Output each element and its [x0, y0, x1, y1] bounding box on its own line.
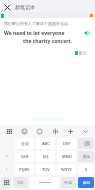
staticText: , [6, 141, 8, 146]
button[interactable]: Backspace [78, 138, 94, 149]
staticText: ! [6, 167, 8, 172]
staticText: PQRS [19, 167, 30, 172]
button[interactable]: , [1, 138, 13, 149]
staticText: We need to let everyone [4, 30, 83, 37]
button[interactable]: 中/英 [61, 177, 76, 188]
staticText: 123 [17, 180, 24, 185]
staticText: 新笔记本 [15, 4, 35, 10]
staticText: 中/英 [64, 180, 73, 185]
staticText: JKL [43, 154, 49, 159]
button[interactable]: Space [30, 177, 59, 188]
button[interactable]: Settings [34, 126, 45, 137]
staticText: the charity concert. [4, 38, 91, 45]
button[interactable]: WXYZ [57, 164, 76, 175]
button[interactable]: MNO [57, 151, 76, 162]
staticText: 我们要让所有人了解这个慈善音乐会。 [4, 21, 91, 26]
button[interactable]: 0 [78, 164, 94, 175]
button[interactable]: 换行 [78, 177, 94, 188]
button[interactable]: ? [1, 151, 13, 162]
staticText: 重输 [83, 155, 90, 159]
button[interactable]: Add [65, 126, 76, 137]
staticText: TUV [42, 167, 50, 172]
button[interactable]: Close [2, 2, 12, 12]
button[interactable]: 重输 [78, 151, 94, 162]
button[interactable]: Hide keyboard [80, 126, 91, 137]
staticText: DEF [63, 141, 71, 146]
staticText: MNO [62, 154, 72, 159]
staticText: WXYZ [61, 167, 72, 172]
button[interactable]: PQRS [15, 164, 34, 175]
button[interactable]: TUV [36, 164, 55, 175]
staticText: 0 [85, 167, 88, 172]
button[interactable]: GHI [15, 151, 34, 162]
staticText: 换行 [83, 181, 90, 185]
button[interactable]: 分词 [15, 138, 34, 149]
button[interactable]: 123 [13, 177, 28, 188]
button[interactable]: Symbols [1, 177, 11, 188]
staticText: ABC [42, 141, 50, 146]
button[interactable]: JKL [36, 151, 55, 162]
button[interactable]: DEF [57, 138, 76, 149]
staticText: GHI [21, 154, 29, 159]
staticText: 分词 [21, 141, 29, 146]
button[interactable]: Voice input [50, 126, 61, 137]
button[interactable]: Play audio [83, 29, 91, 37]
button[interactable]: Emoji [19, 126, 30, 137]
staticText: ? [6, 154, 8, 159]
button[interactable]: ! [1, 164, 13, 175]
button[interactable]: Keyboard layout [4, 126, 15, 137]
button[interactable]: ABC [36, 138, 55, 149]
